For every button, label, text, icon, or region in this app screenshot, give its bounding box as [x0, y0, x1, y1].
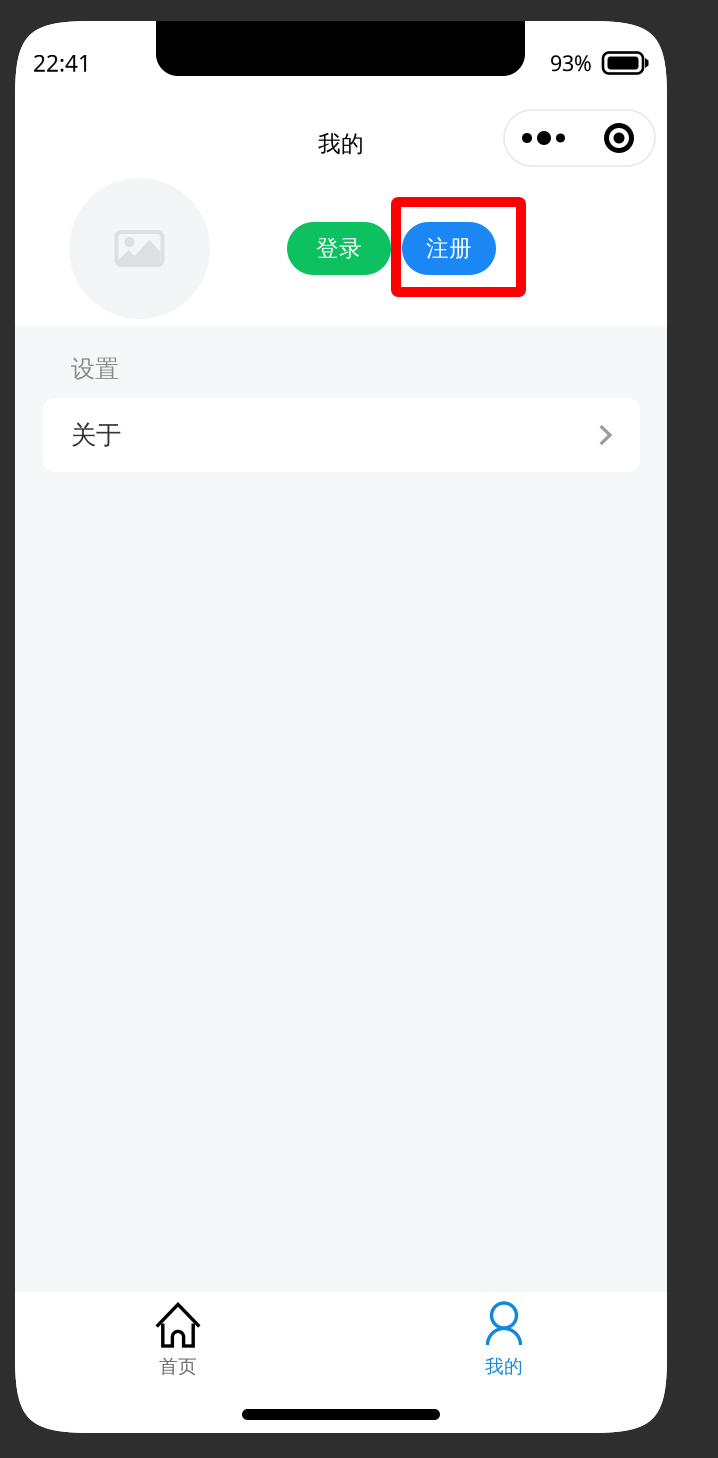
staticText: 设置 [71, 354, 119, 384]
button[interactable]: Avatar [69, 178, 210, 319]
button[interactable]: 注册 [402, 222, 496, 275]
staticText: 注册 [426, 235, 472, 262]
button[interactable]: 登录 [287, 222, 391, 275]
staticText: 我的 [485, 1355, 523, 1378]
button[interactable]: 首页 [15, 1293, 341, 1402]
button[interactable]: More and close [504, 110, 655, 166]
staticText: 关于 [71, 419, 121, 450]
button[interactable]: 我的 [341, 1292, 667, 1403]
staticText: 我的 [318, 130, 364, 158]
staticText: 22:41 [33, 48, 91, 78]
staticText: 登录 [316, 235, 362, 262]
staticText: 93% [550, 49, 592, 77]
staticText: 首页 [159, 1355, 197, 1378]
button[interactable]: 关于 [43, 398, 640, 472]
